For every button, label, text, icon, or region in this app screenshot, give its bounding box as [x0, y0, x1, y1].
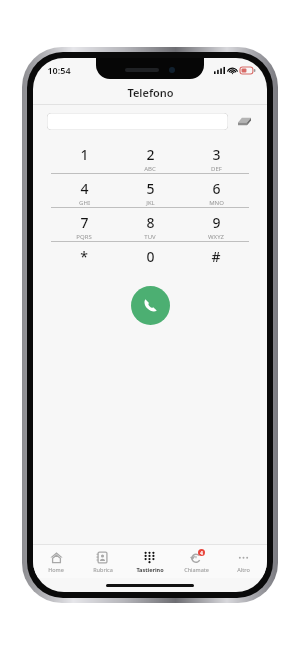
- staticText: Tastierino: [136, 566, 164, 573]
- button[interactable]: *: [51, 242, 117, 275]
- staticText: 8: [146, 213, 155, 232]
- staticText: WXYZ: [208, 233, 224, 241]
- button[interactable]: #: [183, 242, 249, 275]
- staticText: TUV: [144, 233, 156, 241]
- staticText: 5: [146, 179, 155, 198]
- button[interactable]: Home: [33, 545, 79, 578]
- button[interactable]: 2: [117, 140, 183, 173]
- staticText: DEF: [211, 165, 222, 173]
- button[interactable]: Tastierino: [126, 545, 173, 578]
- button[interactable]: 9: [183, 208, 249, 241]
- staticText: 1: [80, 145, 89, 164]
- button[interactable]: [47, 113, 228, 130]
- button[interactable]: 7: [51, 208, 117, 241]
- staticText: 4: [80, 179, 89, 198]
- button[interactable]: Cancella: [235, 112, 253, 130]
- button[interactable]: 4: [51, 174, 117, 207]
- staticText: 10:54: [47, 64, 71, 76]
- staticText: #: [211, 247, 221, 266]
- staticText: 7: [80, 213, 89, 232]
- staticText: 6: [212, 179, 221, 198]
- staticText: GHI: [79, 199, 90, 207]
- button[interactable]: 1: [51, 140, 117, 173]
- button[interactable]: Chiama: [131, 286, 170, 325]
- staticText: Home: [48, 566, 64, 573]
- staticText: Rubrica: [93, 566, 113, 573]
- staticText: PQRS: [76, 233, 92, 241]
- button[interactable]: Altro: [220, 545, 267, 578]
- staticText: Altro: [237, 566, 250, 573]
- button[interactable]: 8: [117, 208, 183, 241]
- staticText: *: [80, 247, 88, 266]
- staticText: MNO: [209, 199, 224, 207]
- staticText: Telefono: [127, 85, 174, 100]
- staticText: 0: [146, 247, 155, 266]
- staticText: 3: [212, 145, 221, 164]
- staticText: 2: [146, 145, 155, 164]
- staticText: 4: [200, 550, 203, 556]
- staticText: JKL: [146, 199, 155, 207]
- staticText: 9: [212, 213, 221, 232]
- staticText: ABC: [144, 165, 156, 173]
- button[interactable]: 3: [183, 140, 249, 173]
- button[interactable]: 5: [117, 174, 183, 207]
- button[interactable]: 0: [117, 242, 183, 275]
- button[interactable]: 4: [173, 545, 220, 578]
- button[interactable]: 6: [183, 174, 249, 207]
- staticText: Chiamate: [184, 566, 209, 573]
- button[interactable]: Rubrica: [79, 545, 126, 578]
